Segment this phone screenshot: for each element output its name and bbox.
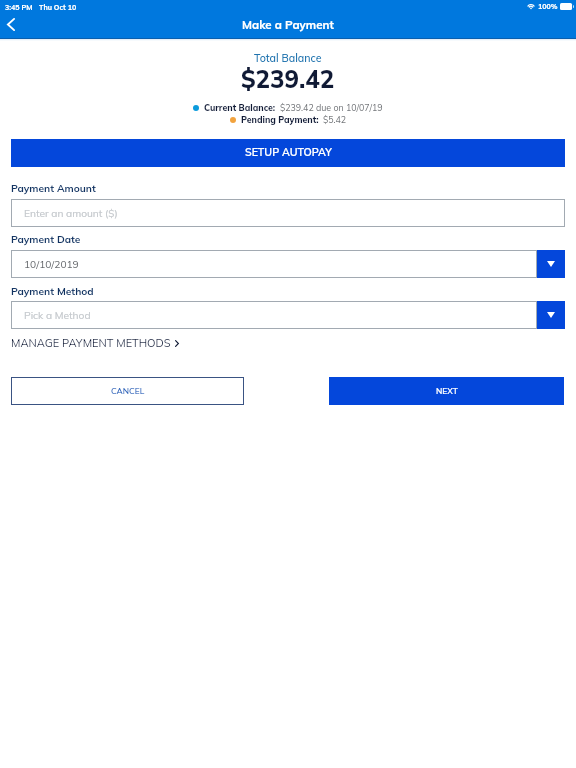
staticText: MANAGE PAYMENT METHODS — [11, 336, 171, 350]
staticText: $239.42 due on 10/07/19 — [280, 102, 383, 113]
staticText: 100% — [538, 2, 558, 11]
staticText: CANCEL — [111, 386, 145, 397]
button[interactable]: Pick a Method — [11, 301, 537, 329]
staticText: Pending Payment: — [241, 114, 319, 125]
staticText: 3:45 PM — [5, 3, 33, 12]
button[interactable]: MANAGE PAYMENT METHODS — [11, 336, 179, 350]
button[interactable]: CANCEL — [11, 377, 244, 405]
staticText: Total Balance — [254, 51, 322, 64]
button[interactable]: 10/10/2019 — [11, 250, 537, 278]
button[interactable]: SETUP AUTOPAY — [11, 139, 565, 167]
staticText: SETUP AUTOPAY — [245, 145, 332, 158]
staticText: Enter an amount ($) — [24, 207, 118, 220]
staticText: $239.42 — [241, 64, 335, 94]
staticText: NEXT — [436, 386, 458, 397]
button[interactable]: Open dropdown — [537, 250, 565, 278]
staticText: Payment Method — [11, 285, 94, 298]
staticText: Pick a Method — [24, 309, 91, 322]
staticText: 10/10/2019 — [24, 258, 79, 271]
staticText: $5.42 — [323, 114, 347, 125]
button[interactable]: Open dropdown — [537, 301, 565, 329]
staticText: Make a Payment — [242, 17, 334, 31]
button[interactable]: Back — [0, 12, 24, 36]
staticText: Payment Amount — [11, 182, 96, 195]
staticText: Thu Oct 10 — [39, 3, 77, 12]
button[interactable]: NEXT — [329, 377, 564, 405]
button[interactable]: Enter an amount ($) — [11, 199, 565, 227]
staticText: Payment Date — [11, 233, 81, 246]
staticText: Current Balance: — [204, 102, 276, 113]
